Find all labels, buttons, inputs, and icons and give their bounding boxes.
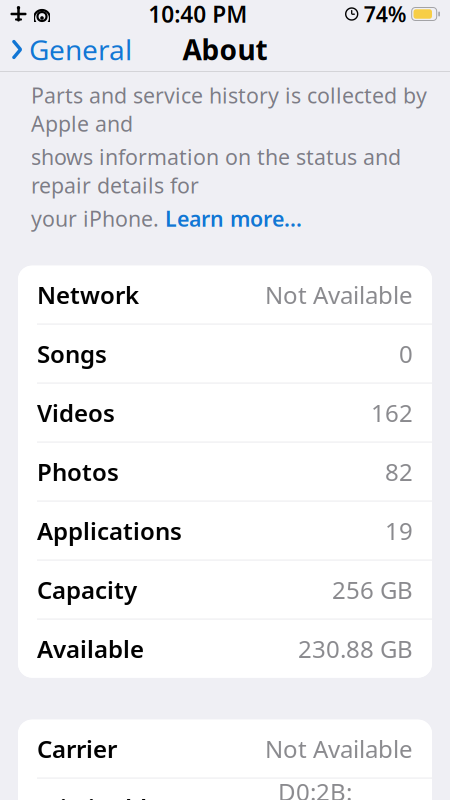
staticText: Capacity	[37, 574, 137, 606]
staticText: 230.88 GB	[298, 633, 413, 665]
button[interactable]: Wi-Fi Address	[18, 779, 432, 800]
staticText: shows information on the status and repa…	[31, 143, 401, 199]
staticText: Photos	[37, 456, 119, 488]
staticText: 256 GB	[332, 574, 413, 606]
button[interactable]: Available	[18, 620, 432, 678]
staticText: Wi-Fi Address	[37, 792, 195, 800]
staticText: 0	[399, 338, 413, 370]
staticText: General	[29, 31, 132, 68]
button[interactable]: Carrier	[18, 720, 432, 779]
staticText: Carrier	[37, 733, 117, 765]
staticText: 10:40 PM	[148, 0, 247, 29]
button[interactable]: Learn more...	[165, 204, 302, 233]
button[interactable]: Network	[18, 266, 432, 325]
staticText: 162	[371, 397, 413, 429]
button[interactable]: General	[0, 25, 132, 74]
button[interactable]: Songs	[18, 325, 432, 384]
button[interactable]: Capacity	[18, 561, 432, 620]
staticText: Not Available	[265, 279, 413, 311]
staticText: D0:2B:20:C3:54:BB	[278, 776, 413, 800]
staticText: 19	[385, 515, 413, 547]
button[interactable]: Applications	[18, 502, 432, 561]
staticText: Not Available	[265, 733, 413, 765]
staticText: Network	[37, 279, 139, 311]
staticText: Learn more...	[165, 204, 302, 233]
staticText: Songs	[37, 338, 107, 370]
button[interactable]: Photos	[18, 443, 432, 502]
staticText: your iPhone.	[31, 204, 165, 233]
staticText: Videos	[37, 397, 115, 429]
staticText: 74%	[364, 0, 407, 28]
staticText: Parts and service history is collected b…	[31, 81, 427, 138]
staticText: 82	[385, 456, 413, 488]
staticText: Available	[37, 633, 144, 665]
staticText: About	[182, 31, 267, 68]
staticText: Applications	[37, 515, 182, 547]
button[interactable]: Videos	[18, 384, 432, 443]
